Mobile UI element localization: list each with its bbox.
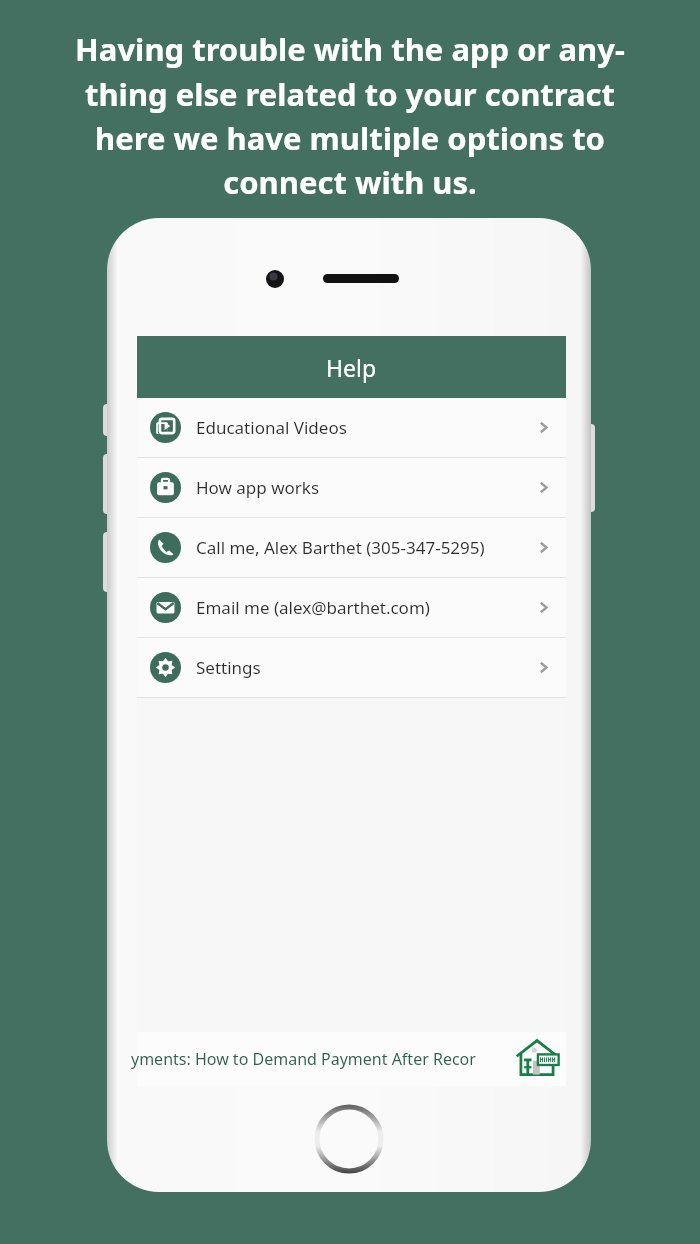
other: Home [314,1104,384,1174]
staticText: Settings [196,656,535,679]
other: Home logo [514,1036,560,1082]
button[interactable]: Educational Videos [137,398,566,458]
button[interactable]: Email me (alex@barthet.com) [137,578,566,638]
staticText: Email me (alex@barthet.com) [196,596,535,619]
button[interactable]: Call me, Alex Barthet (305-347-5295) [137,518,566,578]
staticText: Help [326,352,377,383]
staticText: yments: How to Demand Payment After Reco… [131,1048,476,1070]
button[interactable]: How app works [137,458,566,518]
button[interactable]: Settings [137,638,566,698]
button[interactable]: yments: How to Demand Payment After Reco… [137,1032,566,1086]
staticText: Educational Videos [196,416,535,439]
staticText: Having trouble with the app or any- thin… [18,28,682,203]
staticText: Call me, Alex Barthet (305-347-5295) [196,536,535,559]
staticText: How app works [196,476,535,499]
